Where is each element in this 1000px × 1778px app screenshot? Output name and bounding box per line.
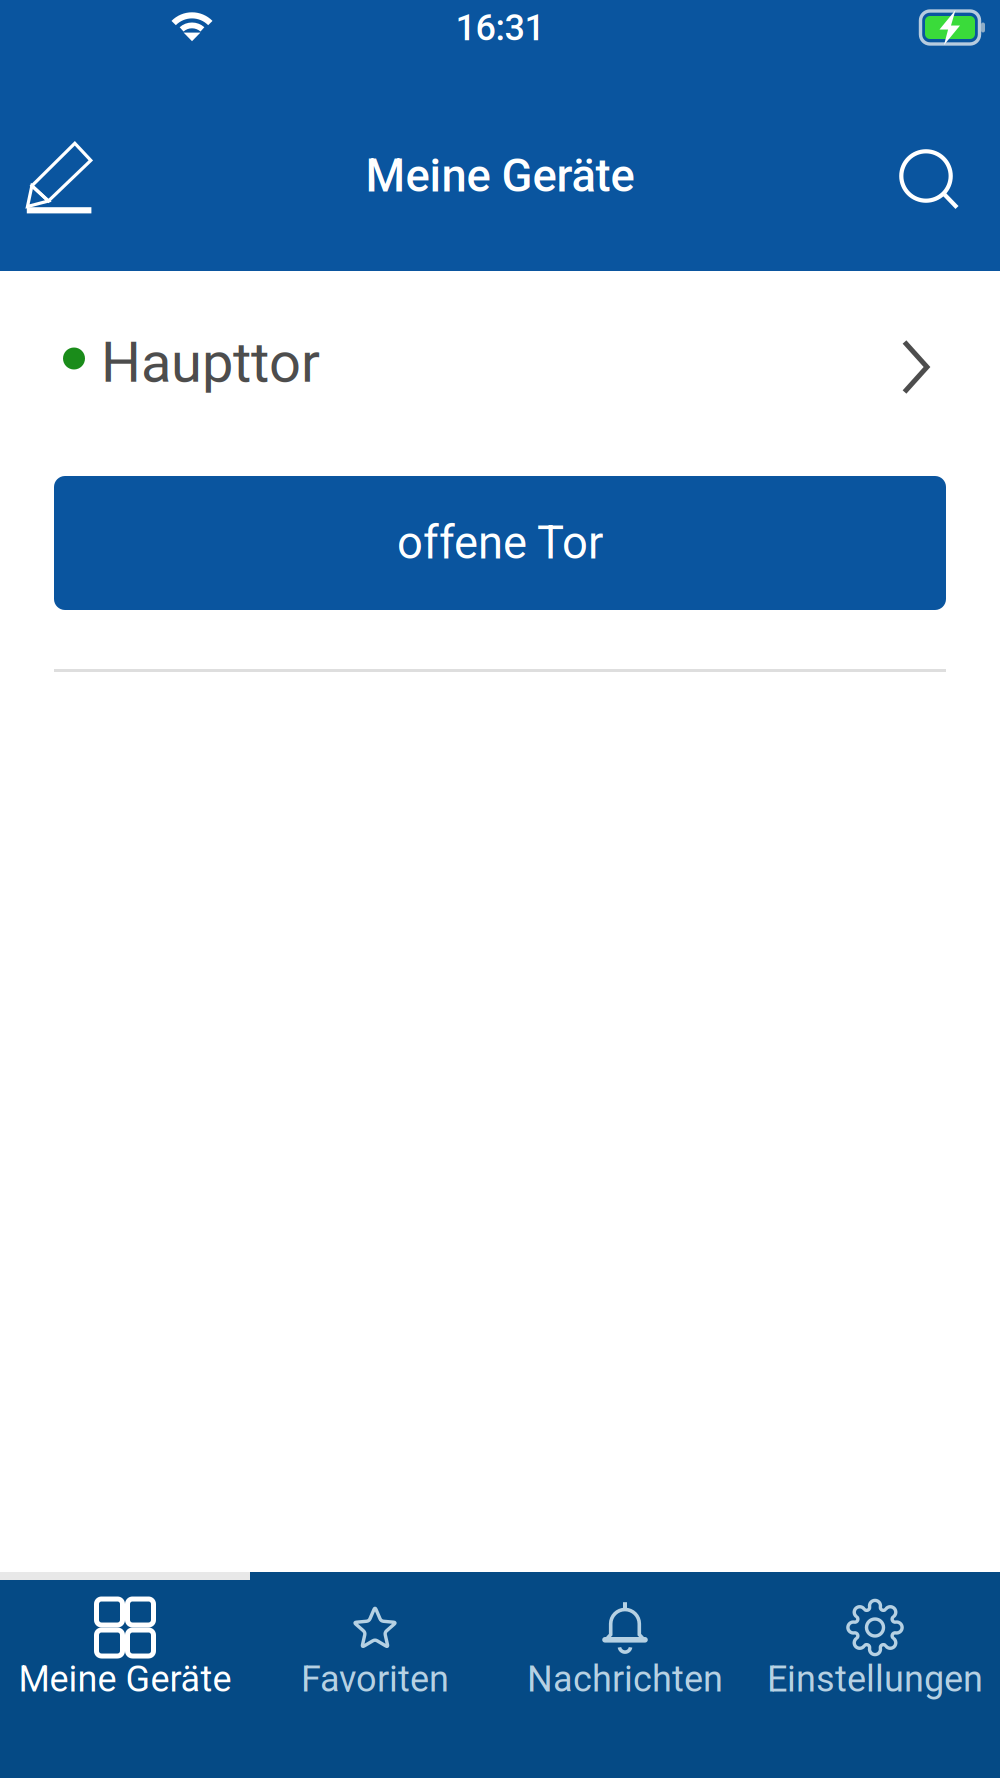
button[interactable]: Einstellungen	[750, 1572, 1000, 1778]
button[interactable]: Suchen	[870, 96, 1000, 230]
staticText: Favoriten	[301, 1658, 449, 1700]
staticText: Nachrichten	[527, 1658, 723, 1700]
staticText: Einstellungen	[767, 1658, 983, 1700]
staticText: Haupttor	[101, 330, 320, 395]
button[interactable]: Favoriten	[250, 1572, 500, 1778]
staticText: Meine Geräte	[18, 1658, 231, 1700]
button[interactable]: Nachrichten	[500, 1572, 750, 1778]
button[interactable]: offene Tor	[54, 476, 946, 610]
button[interactable]: Haupttor	[0, 319, 1000, 415]
button[interactable]: Bearbeiten	[0, 98, 118, 229]
button[interactable]: Meine Geräte	[0, 1572, 250, 1778]
staticText: offene Tor	[397, 516, 603, 569]
staticText: 16:31	[455, 7, 544, 49]
staticText: Meine Geräte	[365, 149, 634, 202]
